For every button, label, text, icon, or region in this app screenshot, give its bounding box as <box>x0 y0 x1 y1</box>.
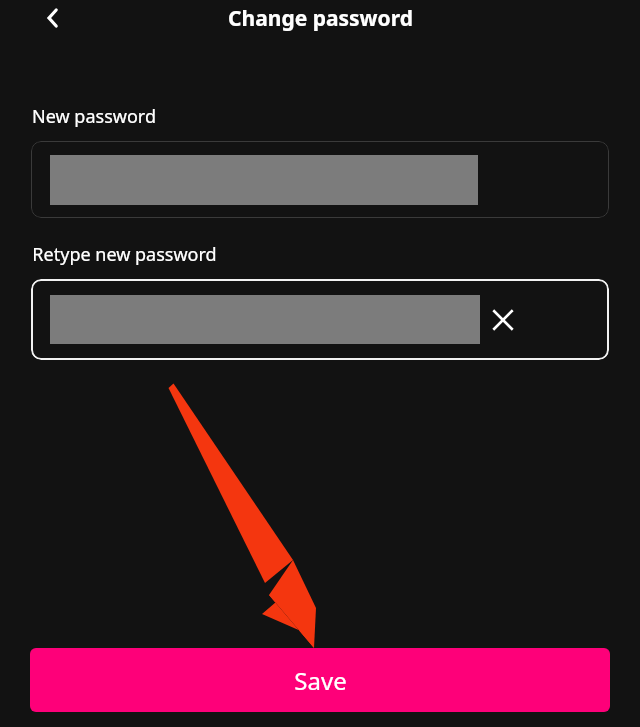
staticText: Retype new password <box>32 242 217 267</box>
button[interactable]: Clear text <box>481 298 525 342</box>
button[interactable]: Save <box>30 648 610 712</box>
staticText: Change password <box>228 4 413 33</box>
staticText: Save <box>294 664 347 697</box>
staticText: New password <box>32 104 156 129</box>
button[interactable]: Back <box>33 0 73 38</box>
button[interactable] <box>31 141 609 218</box>
button[interactable]: Clear text <box>31 279 609 360</box>
